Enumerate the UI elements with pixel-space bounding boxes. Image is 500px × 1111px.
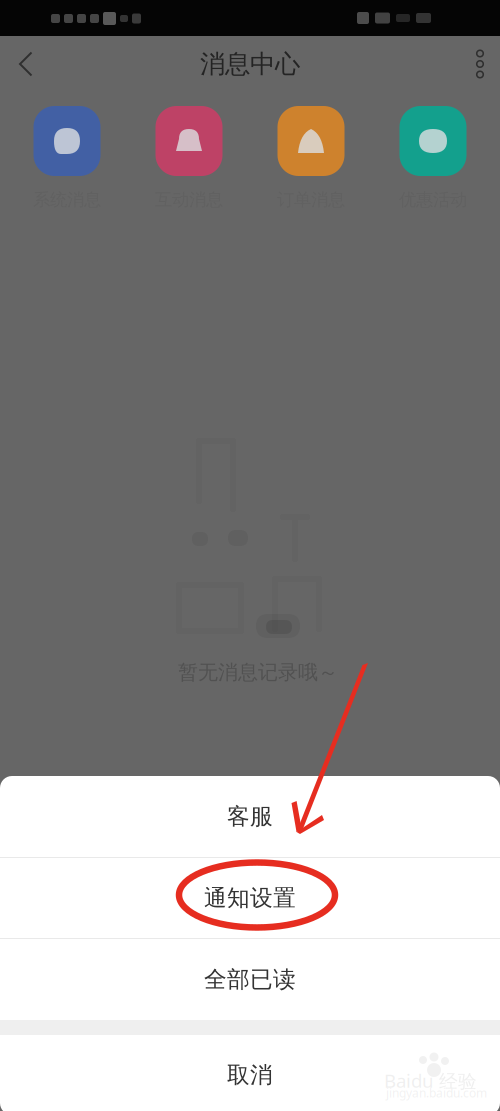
staticText: Baidu 经验 <box>384 1068 477 1093</box>
staticText: 取消 <box>227 1061 273 1089</box>
staticText: jingyan.baidu.com <box>386 1085 487 1101</box>
staticText: 暂无消息记录哦～ <box>178 660 338 685</box>
staticText: 全部已读 <box>204 966 296 993</box>
staticText: 消息中心 <box>200 48 300 79</box>
button[interactable]: 订单消息 <box>250 106 372 210</box>
button[interactable]: 优惠活动 <box>372 106 494 210</box>
staticText: 通知设置 <box>204 884 296 912</box>
button[interactable]: 客服 <box>0 776 500 857</box>
button[interactable]: 取消 <box>0 1035 500 1111</box>
button[interactable]: More options <box>460 37 500 91</box>
button[interactable]: Back <box>0 37 52 91</box>
button[interactable]: 通知设置 <box>0 858 500 938</box>
staticText: 客服 <box>227 803 273 830</box>
button[interactable]: 全部已读 <box>0 939 500 1020</box>
button[interactable]: 系统消息 <box>6 106 128 210</box>
button[interactable]: 互动消息 <box>128 106 250 210</box>
